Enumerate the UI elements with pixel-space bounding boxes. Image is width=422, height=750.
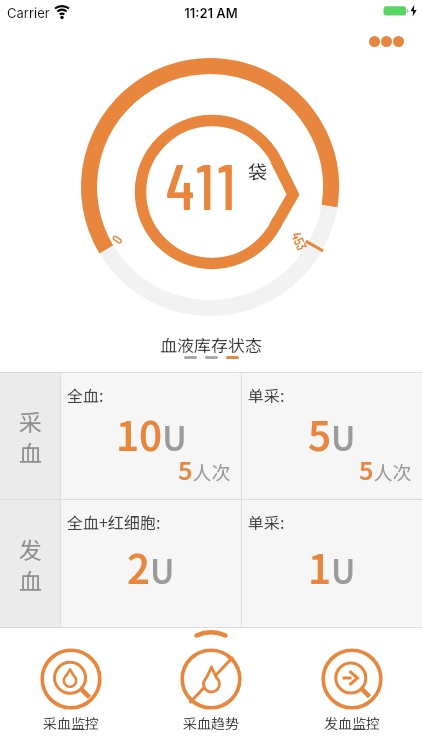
button[interactable]: 单采: (242, 500, 422, 627)
staticText: 血液库存状态 (0, 332, 422, 357)
staticText: Carrier (7, 5, 50, 21)
staticText: 单采: (248, 510, 285, 533)
staticText: 发血监控 (324, 713, 380, 733)
button[interactable]: 全血+红细胞: (61, 500, 241, 627)
staticText: 10U (116, 405, 187, 463)
staticText: 1U (308, 538, 356, 596)
staticText: 采血监控 (43, 713, 99, 733)
button[interactable]: 单采: (242, 373, 422, 499)
staticText: 2U (127, 538, 175, 596)
button[interactable]: 发血监控 (302, 648, 402, 733)
button[interactable]: 全血: (61, 373, 241, 499)
button[interactable]: 采血监控 (21, 648, 121, 733)
staticText: 5人次 (359, 451, 412, 487)
staticText: 全血+红细胞: (67, 510, 161, 533)
staticText: 11:21 AM (0, 5, 422, 21)
staticText: 发 血 (19, 532, 42, 596)
staticText: 5人次 (178, 451, 231, 487)
staticText: 采 血 (19, 404, 42, 468)
button[interactable] (369, 36, 404, 47)
button[interactable]: 采血趋势 (161, 648, 261, 733)
staticText: 单采: (248, 383, 285, 406)
staticText: 全血: (67, 383, 104, 406)
staticText: 采血趋势 (183, 713, 239, 733)
staticText: 5U (308, 405, 356, 463)
